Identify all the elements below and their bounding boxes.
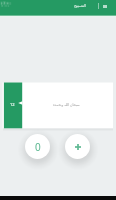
staticText: سبحان الله وبحمده (53, 102, 80, 107)
button[interactable]: 12 (2, 82, 114, 130)
button[interactable]: Reset counter (25, 134, 50, 159)
button[interactable]: More options (99, 1, 111, 13)
button[interactable]: Increment counter (65, 134, 90, 159)
staticText: 0 (35, 140, 41, 154)
staticText: التسبيح (74, 3, 87, 8)
staticText: 12 (10, 102, 15, 107)
